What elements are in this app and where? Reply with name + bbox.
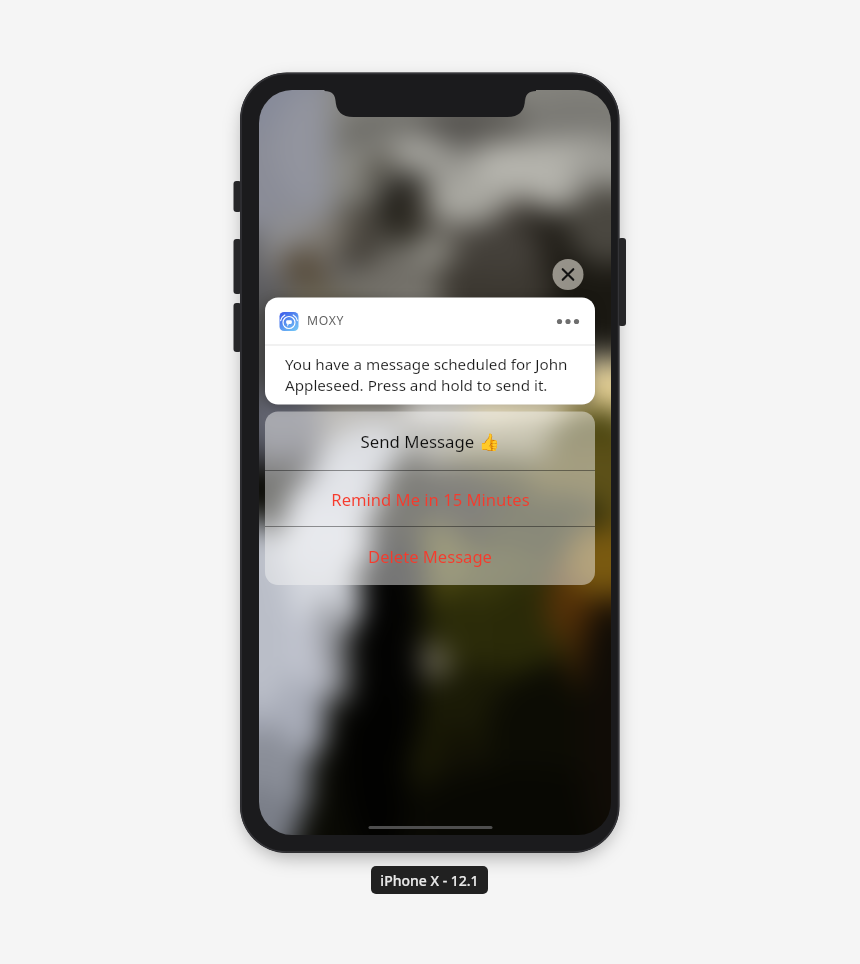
button[interactable]: Delete Message (265, 527, 595, 585)
staticText: Delete Message (368, 545, 492, 568)
staticText: MOXY (307, 312, 345, 329)
button[interactable]: iPhone X - 12.1 (371, 866, 488, 894)
staticText: You have a message scheduled for John Ap… (285, 354, 568, 396)
button[interactable]: Remind Me in 15 Minutes (265, 471, 595, 527)
button[interactable]: MOXY (265, 297, 595, 404)
staticText: Send Message 👍 (360, 430, 500, 453)
button[interactable]: Close (552, 259, 583, 290)
staticText: Remind Me in 15 Minutes (331, 488, 530, 511)
staticText: iPhone X - 12.1 (380, 871, 479, 890)
button[interactable]: Send Message 👍 (265, 412, 595, 471)
